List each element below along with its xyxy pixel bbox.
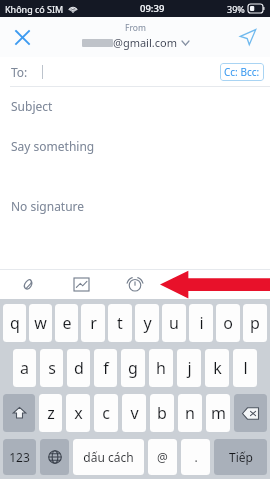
staticText: a: [20, 357, 29, 379]
staticText: p: [250, 312, 260, 334]
button[interactable]: j: [177, 349, 201, 387]
button[interactable]: k: [205, 349, 229, 387]
staticText: c: [102, 402, 110, 424]
staticText: .: [194, 449, 198, 465]
button[interactable]: t: [108, 304, 132, 342]
staticText: w: [34, 312, 47, 334]
button[interactable]: g: [121, 349, 145, 387]
button[interactable]: @: [148, 439, 177, 475]
staticText: u: [169, 312, 179, 334]
button[interactable]: f: [94, 349, 117, 387]
button[interactable]: To:: [0, 57, 270, 86]
staticText: m: [211, 402, 226, 424]
button[interactable]: Insert image: [54, 269, 108, 299]
button[interactable]: l: [233, 349, 257, 387]
button[interactable]: z: [39, 394, 62, 432]
button[interactable]: Options: [216, 269, 270, 299]
staticText: No signature: [11, 198, 85, 214]
button[interactable]: o: [216, 304, 240, 342]
staticText: v: [130, 402, 139, 424]
button[interactable]: Attach: [0, 269, 54, 299]
staticText: dấu cách: [83, 449, 134, 465]
staticText: Cc: Bcc:: [224, 65, 260, 79]
button[interactable]: b: [150, 394, 174, 432]
button[interactable]: No signature: [0, 189, 270, 223]
staticText: 39%: [227, 3, 245, 15]
staticText: n: [185, 402, 195, 424]
staticText: To:: [11, 64, 28, 80]
staticText: d: [74, 357, 84, 379]
staticText: Say something: [11, 138, 95, 154]
staticText: e: [62, 312, 72, 334]
button[interactable]: More: [162, 269, 216, 299]
button[interactable]: Change keyboard: [40, 439, 69, 475]
button[interactable]: Subject: [0, 87, 270, 125]
button[interactable]: d: [67, 349, 90, 387]
button[interactable]: dấu cách: [73, 439, 144, 475]
staticText: Không có SIM: [5, 3, 64, 15]
staticText: o: [223, 312, 233, 334]
button[interactable]: e: [55, 304, 78, 342]
staticText: 09:39: [140, 2, 165, 15]
button[interactable]: u: [162, 304, 186, 342]
staticText: r: [90, 312, 97, 334]
staticText: 123: [9, 449, 30, 465]
staticText: y: [143, 312, 152, 334]
staticText: g: [128, 357, 138, 379]
staticText: x: [74, 402, 83, 424]
staticText: f: [103, 357, 109, 379]
staticText: @: [157, 449, 168, 465]
staticText: k: [213, 357, 222, 379]
button[interactable]: h: [149, 349, 173, 387]
staticText: q: [10, 312, 20, 334]
button[interactable]: n: [178, 394, 202, 432]
staticText: From: [125, 22, 146, 34]
button[interactable]: x: [66, 394, 90, 432]
staticText: b: [157, 402, 167, 424]
staticText: Subject: [11, 98, 53, 114]
staticText: i: [199, 312, 204, 334]
button[interactable]: r: [81, 304, 105, 342]
staticText: t: [117, 312, 123, 334]
staticText: l: [243, 357, 248, 379]
button[interactable]: a: [13, 349, 36, 387]
button[interactable]: p: [243, 304, 267, 342]
staticText: Tiếp: [229, 449, 253, 465]
button[interactable]: w: [29, 304, 52, 342]
button[interactable]: c: [94, 394, 118, 432]
staticText: h: [156, 357, 166, 379]
button[interactable]: Say something: [0, 125, 270, 167]
button[interactable]: q: [3, 304, 26, 342]
button[interactable]: .: [181, 439, 210, 475]
button[interactable]: y: [135, 304, 159, 342]
button[interactable]: m: [206, 394, 230, 432]
button[interactable]: v: [122, 394, 146, 432]
staticText: z: [47, 402, 55, 424]
button[interactable]: Backspace: [234, 394, 267, 432]
staticText: @gmail.com: [113, 35, 177, 50]
button[interactable]: i: [189, 304, 213, 342]
button[interactable]: Cc: Bcc:: [220, 63, 264, 81]
button[interactable]: Close: [8, 23, 36, 51]
staticText: s: [48, 357, 56, 379]
button[interactable]: Schedule: [108, 269, 162, 299]
button[interactable]: Tiếp: [214, 439, 267, 475]
button[interactable]: s: [40, 349, 63, 387]
button[interactable]: 123: [3, 439, 36, 475]
button[interactable]: Send: [234, 23, 262, 51]
staticText: j: [187, 357, 192, 379]
button[interactable]: Shift: [3, 394, 35, 432]
